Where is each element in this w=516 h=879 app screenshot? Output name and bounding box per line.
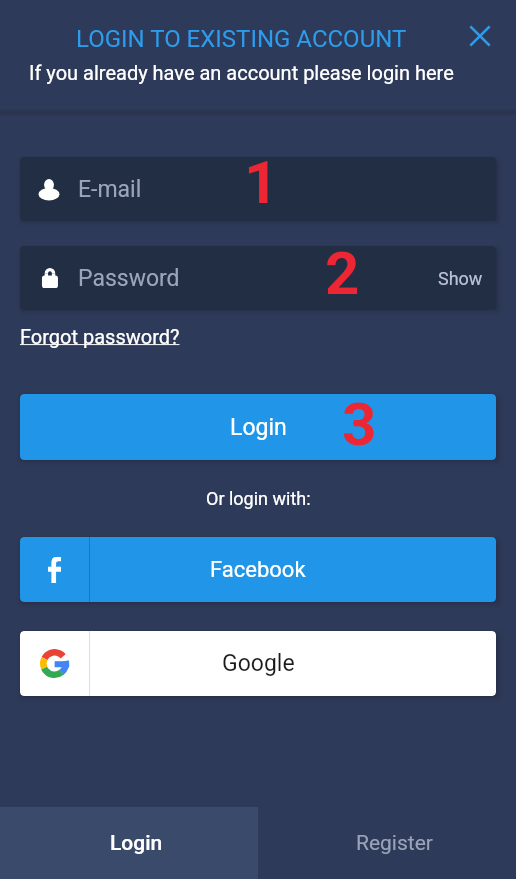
button[interactable]: E-mail: [20, 157, 496, 221]
staticText: Facebook: [210, 557, 306, 583]
button[interactable]: Show: [438, 268, 483, 289]
staticText: If you already have an account please lo…: [29, 61, 454, 84]
staticText: Login: [110, 831, 163, 856]
button[interactable]: Password: [20, 246, 496, 310]
button[interactable]: Google: [20, 631, 496, 696]
staticText: Google: [222, 650, 295, 677]
staticText: Register: [356, 831, 433, 856]
button[interactable]: Login: [20, 394, 496, 460]
staticText: LOGIN TO EXISTING ACCOUNT: [76, 25, 407, 53]
staticText: 3: [342, 389, 377, 459]
staticText: 1: [244, 147, 279, 217]
staticText: 2: [325, 238, 360, 308]
staticText: Login: [230, 414, 287, 441]
button[interactable]: Facebook: [20, 537, 496, 602]
button[interactable]: Register: [258, 807, 516, 879]
button[interactable]: Forgot password?: [20, 325, 180, 348]
button[interactable]: Close: [452, 8, 508, 64]
staticText: Password: [78, 265, 180, 292]
staticText: E-mail: [78, 176, 142, 203]
staticText: Or login with:: [206, 488, 311, 509]
button[interactable]: Login: [0, 807, 258, 879]
